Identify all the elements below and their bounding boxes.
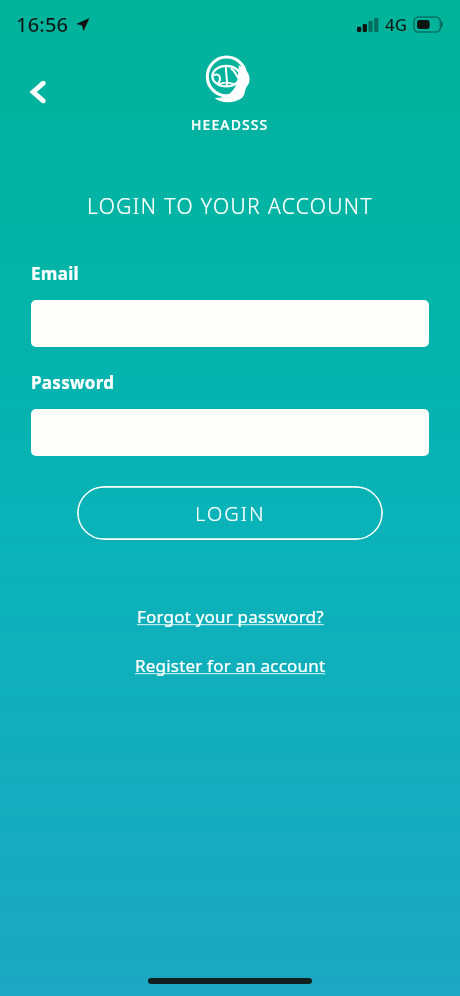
- staticText: LOGIN TO YOUR ACCOUNT: [0, 192, 460, 221]
- button[interactable]: Register for an account: [131, 651, 330, 680]
- staticText: Email: [31, 262, 79, 285]
- button[interactable]: Password input: [31, 409, 429, 456]
- staticText: Register for an account: [135, 654, 326, 677]
- button[interactable]: LOGIN: [77, 486, 383, 540]
- staticText: Password: [31, 371, 115, 394]
- button[interactable]: Email input: [31, 300, 429, 347]
- staticText: 4G: [385, 13, 408, 36]
- staticText: 16:56: [16, 11, 69, 38]
- staticText: LOGIN: [195, 500, 266, 527]
- staticText: HEEADSSS: [191, 115, 269, 134]
- button[interactable]: Back: [10, 64, 66, 120]
- button[interactable]: Forgot your password?: [133, 602, 328, 631]
- staticText: Forgot your password?: [137, 605, 324, 628]
